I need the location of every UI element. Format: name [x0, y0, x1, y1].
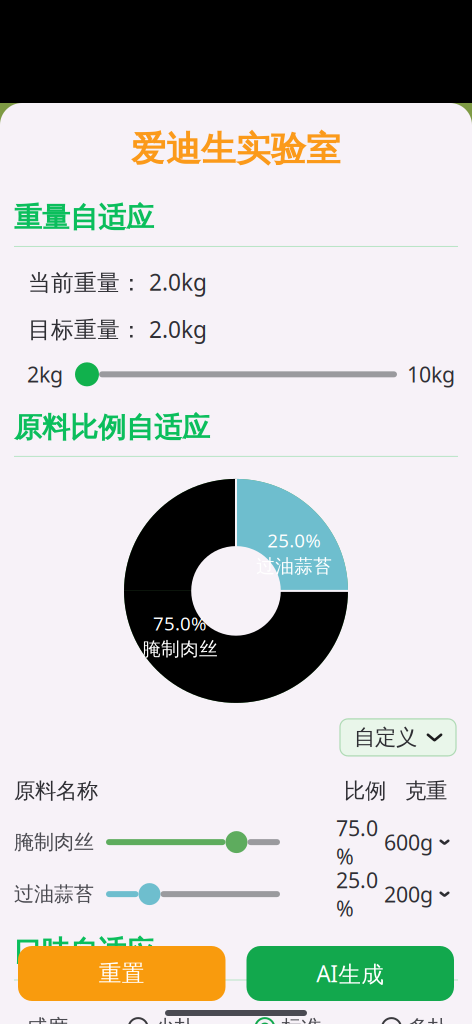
staticText: 口味自适应 [14, 934, 154, 968]
staticText: 原料名称 [14, 778, 98, 804]
staticText: 腌制肉丝 [14, 830, 94, 854]
staticText: 重置 [99, 960, 145, 987]
staticText: 重量自适应 [14, 201, 154, 235]
staticText: 过油蒜苔 [14, 882, 94, 906]
button[interactable]: 200g [378, 877, 456, 911]
staticText: 25.0% [336, 866, 378, 922]
staticText: 爱迪生实验室 [131, 128, 341, 171]
staticText: 过油蒜苔 [256, 555, 332, 578]
staticText: 200g [384, 880, 433, 908]
staticText: 自定义 [354, 724, 417, 750]
staticText: 标准 [281, 1015, 321, 1024]
button[interactable]: 重置 [18, 946, 225, 1001]
staticText: 比例 [344, 778, 386, 804]
staticText: 600g [384, 828, 433, 856]
button[interactable]: 自定义 [340, 719, 456, 756]
staticText: 克重 [405, 778, 447, 804]
staticText: 咸度 [26, 1014, 68, 1024]
staticText: 多扑 [408, 1015, 448, 1024]
staticText: 目标重量： 2.0kg [28, 314, 207, 344]
staticText: 原料比例自适应 [14, 410, 210, 445]
button[interactable]: 600g [378, 825, 456, 859]
staticText: 少扑 [155, 1015, 195, 1024]
staticText: AI生成 [316, 958, 384, 989]
staticText: 75.0% [336, 814, 378, 870]
staticText: 25.0% [267, 528, 321, 553]
staticText: 2kg [27, 360, 63, 388]
button[interactable]: AI生成 [246, 946, 454, 1001]
staticText: 腌制肉丝 [142, 638, 218, 660]
staticText: 10kg [407, 360, 455, 388]
staticText: 75.0% [153, 611, 207, 636]
staticText: 当前重量： 2.0kg [28, 267, 207, 297]
